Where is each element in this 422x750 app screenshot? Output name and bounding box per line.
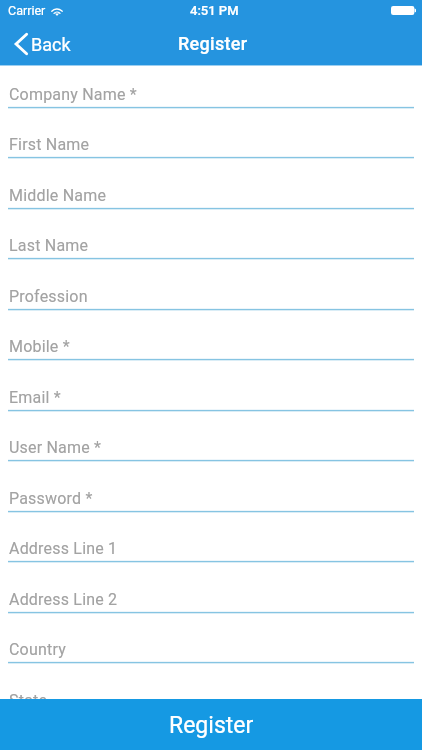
staticText: User Name * — [9, 438, 102, 457]
button[interactable]: Address Line 1 — [0, 519, 422, 569]
button[interactable]: Address Line 2 — [0, 570, 422, 620]
staticText: Register — [169, 712, 254, 739]
staticText: Address Line 2 — [9, 590, 118, 609]
staticText: Email * — [9, 388, 61, 407]
button[interactable]: State — [0, 671, 422, 721]
staticText: Last Name — [9, 236, 89, 255]
button[interactable]: Country — [0, 620, 422, 670]
other: Back — [12, 32, 29, 56]
staticText: Register — [178, 33, 248, 54]
staticText: Back — [31, 34, 71, 55]
staticText: Address Line 1 — [9, 539, 118, 558]
staticText: First Name — [9, 135, 90, 154]
button[interactable]: Register — [0, 699, 422, 750]
button[interactable]: Profession — [0, 267, 422, 317]
button[interactable]: Email * — [0, 368, 422, 418]
staticText: State — [9, 691, 48, 710]
other: Wi-Fi — [50, 6, 64, 16]
button[interactable]: Middle Name — [0, 166, 422, 216]
staticText: Mobile * — [9, 337, 70, 356]
staticText: Carrier — [8, 3, 46, 18]
button[interactable]: User Name * — [0, 418, 422, 468]
button[interactable]: Back — [8, 28, 75, 60]
button[interactable]: Last Name — [0, 216, 422, 266]
button[interactable]: Password * — [0, 469, 422, 519]
staticText: Middle Name — [9, 186, 107, 205]
button[interactable]: Mobile * — [0, 317, 422, 367]
staticText: 4:51 PM — [190, 3, 239, 18]
button[interactable]: First Name — [0, 115, 422, 165]
staticText: Company Name * — [9, 85, 137, 104]
staticText: Password * — [9, 489, 93, 508]
staticText: Profession — [9, 287, 88, 306]
button[interactable]: Company Name * — [0, 65, 422, 115]
staticText: Country — [9, 640, 66, 659]
